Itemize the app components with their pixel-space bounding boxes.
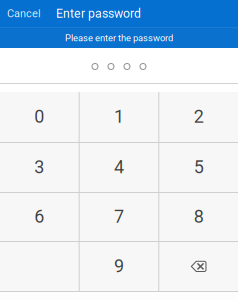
staticText: 4 <box>114 156 124 178</box>
staticText: 3 <box>34 156 44 178</box>
staticText: Please enter the password <box>65 32 173 43</box>
button[interactable]: Cancel <box>0 0 56 27</box>
button[interactable]: 0 <box>0 92 79 142</box>
staticText: 1 <box>114 106 124 127</box>
button[interactable]: 5 <box>159 143 238 192</box>
staticText: Enter password <box>56 6 141 21</box>
staticText: 8 <box>194 206 204 227</box>
button[interactable]: 7 <box>80 193 158 241</box>
button[interactable]: Delete <box>159 242 238 291</box>
button[interactable]: 3 <box>0 143 79 192</box>
staticText: 6 <box>34 206 44 227</box>
button[interactable]: 4 <box>80 143 158 192</box>
button[interactable]: 1 <box>80 92 158 142</box>
button[interactable]: 9 <box>80 242 158 291</box>
staticText: 9 <box>114 255 124 277</box>
staticText: 7 <box>114 206 124 227</box>
staticText: 0 <box>34 106 44 127</box>
button[interactable]: 6 <box>0 193 79 241</box>
staticText: Cancel <box>7 7 41 20</box>
button[interactable]: 8 <box>159 193 238 241</box>
staticText: 5 <box>194 156 204 178</box>
button[interactable]: 2 <box>159 92 238 142</box>
staticText: 2 <box>194 106 204 127</box>
